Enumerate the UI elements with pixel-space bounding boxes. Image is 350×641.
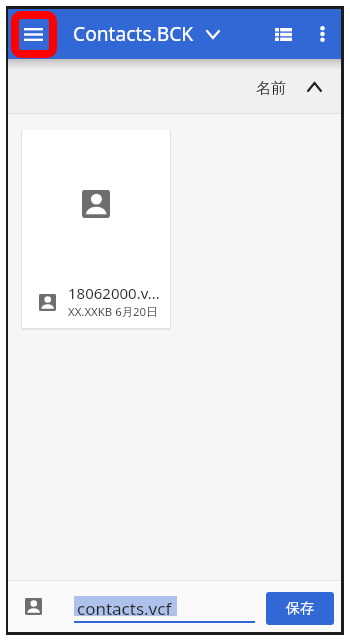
button[interactable]: File name <box>74 589 255 623</box>
button[interactable]: Switch to list view <box>266 17 300 51</box>
button[interactable]: Change folder <box>196 17 230 51</box>
button[interactable]: 名前 <box>256 59 341 114</box>
button[interactable]: 18062000.v… <box>22 130 170 328</box>
staticText: Contacts.BCK <box>73 20 194 46</box>
staticText: 18062000.v… <box>68 283 160 303</box>
button[interactable]: Open navigation drawer <box>16 17 50 51</box>
staticText: contacts.vcf <box>77 597 172 620</box>
staticText: XX.XXKB 6月20日 <box>68 304 158 320</box>
staticText: 保存 <box>286 600 314 618</box>
staticText: 名前 <box>256 79 286 98</box>
button[interactable]: 保存 <box>266 592 334 625</box>
button[interactable]: More options <box>305 17 339 51</box>
